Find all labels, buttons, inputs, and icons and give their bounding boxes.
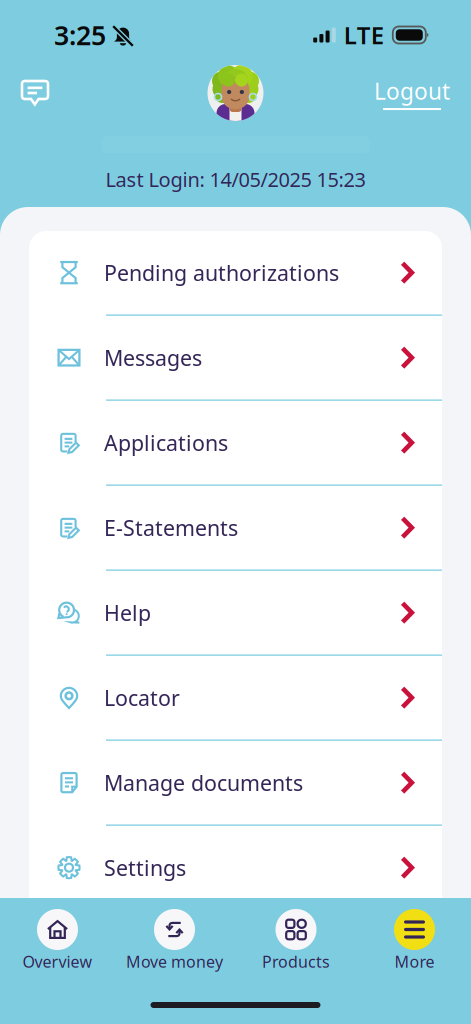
staticText: E-Statements	[104, 513, 238, 542]
staticText: Manage documents	[104, 768, 303, 797]
button[interactable]: Messages	[18, 77, 52, 109]
staticText: More	[394, 951, 434, 972]
staticText: Logout	[374, 76, 450, 106]
staticText: Settings	[104, 853, 186, 882]
staticText: LTE	[344, 19, 384, 51]
button[interactable]: Pending authorizations	[29, 231, 442, 316]
button[interactable]: More	[358, 898, 471, 984]
button[interactable]: Overview	[0, 898, 115, 984]
staticText: Last Login: 14/05/2025 15:23	[105, 166, 365, 193]
button[interactable]: Help	[29, 571, 442, 656]
staticText: Locator	[104, 683, 180, 712]
button[interactable]: Move money	[115, 898, 234, 984]
button[interactable]: E-Statements	[29, 486, 442, 571]
button[interactable]: Settings	[29, 826, 442, 911]
staticText: Products	[262, 951, 330, 972]
staticText: 3:25	[54, 17, 106, 53]
staticText: Applications	[104, 428, 228, 457]
staticText: Contact us	[104, 938, 210, 967]
button[interactable]: Logout	[370, 72, 454, 114]
button[interactable]: Messages	[29, 316, 442, 401]
staticText: Help	[104, 598, 151, 627]
staticText: Move money	[126, 951, 223, 972]
button[interactable]: Products	[234, 898, 358, 984]
button[interactable]: Manage documents	[29, 741, 442, 826]
button[interactable]: Contact us	[29, 911, 442, 996]
button[interactable]: Applications	[29, 401, 442, 486]
staticText: Overview	[22, 951, 92, 972]
button[interactable]: Locator	[29, 656, 442, 741]
staticText: Pending authorizations	[104, 258, 339, 287]
staticText: Messages	[104, 343, 202, 372]
